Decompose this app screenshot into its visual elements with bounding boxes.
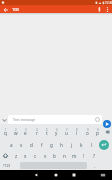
staticText: q xyxy=(4,130,7,136)
staticText: ? xyxy=(93,153,95,159)
staticText: y xyxy=(55,130,58,136)
staticText: a xyxy=(10,142,13,148)
staticText: 3 xyxy=(25,128,27,132)
staticText: ?123 xyxy=(3,163,11,168)
staticText: p xyxy=(96,130,99,136)
staticText: z xyxy=(15,153,18,159)
staticText: i xyxy=(76,130,78,136)
staticText: c xyxy=(34,153,37,159)
staticText: ! xyxy=(83,153,85,159)
staticText: 9 xyxy=(87,128,89,132)
staticText: x xyxy=(24,153,27,159)
staticText: h xyxy=(60,142,63,148)
staticText: 100 xyxy=(12,7,19,12)
button[interactable]: Text message xyxy=(8,115,102,124)
button[interactable] xyxy=(52,171,60,179)
staticText: m xyxy=(72,153,77,159)
staticText: r xyxy=(36,130,38,136)
button[interactable] xyxy=(99,171,107,179)
staticText: Text message xyxy=(13,117,36,122)
staticText: . xyxy=(94,163,96,169)
button[interactable] xyxy=(70,171,78,179)
staticText: 7 xyxy=(66,128,68,132)
staticText: 1 xyxy=(5,128,7,132)
staticText: k xyxy=(80,142,83,148)
staticText: w xyxy=(14,130,18,136)
button[interactable] xyxy=(96,6,103,13)
staticText: s xyxy=(20,142,23,148)
staticText: b xyxy=(53,153,56,159)
staticText: 8 xyxy=(76,128,78,132)
staticText: j xyxy=(71,142,73,148)
staticText: e xyxy=(24,130,27,136)
staticText: g xyxy=(50,142,53,148)
staticText: 6 xyxy=(56,128,58,132)
staticText: v xyxy=(44,153,47,159)
staticText: f xyxy=(41,142,43,148)
button[interactable] xyxy=(104,6,111,13)
staticText: d xyxy=(30,142,33,148)
button[interactable] xyxy=(3,7,9,13)
staticText: o xyxy=(86,130,89,136)
button[interactable] xyxy=(103,120,111,128)
staticText: t xyxy=(46,130,48,136)
staticText: 2 xyxy=(15,128,17,132)
staticText: l xyxy=(91,142,93,148)
staticText: 4 xyxy=(36,128,38,132)
button[interactable] xyxy=(99,140,109,150)
staticText: 0 xyxy=(97,128,99,132)
staticText: n xyxy=(63,153,66,159)
staticText: 12:30 xyxy=(105,1,112,5)
staticText: 5 xyxy=(46,128,48,132)
button[interactable] xyxy=(32,171,40,179)
staticText: u xyxy=(65,130,68,136)
